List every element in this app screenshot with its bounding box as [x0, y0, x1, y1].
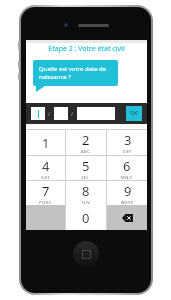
button[interactable]: 5 — [66, 156, 106, 180]
button[interactable]: 3 — [107, 130, 147, 155]
staticText: 5 — [82, 157, 90, 175]
button[interactable]: 6 — [107, 156, 147, 180]
staticText: WXYZ — [121, 200, 134, 205]
staticText: 4 — [42, 157, 50, 175]
button[interactable]: 2 — [66, 130, 106, 155]
button[interactable] — [31, 107, 45, 120]
staticText: 1 — [42, 134, 50, 152]
staticText: 6 — [123, 157, 131, 175]
staticText: GHI — [41, 175, 50, 180]
button[interactable]: 4 — [26, 156, 65, 180]
staticText: 0 — [82, 209, 90, 227]
button[interactable]: 7 — [26, 181, 65, 205]
button[interactable]: 0 — [66, 205, 106, 230]
staticText: OK — [130, 110, 138, 117]
staticText: Quelle est votre date de naissance ? — [39, 65, 112, 81]
staticText: DEF — [123, 149, 132, 154]
staticText: TUV — [81, 200, 91, 205]
staticText: ABC — [81, 149, 91, 154]
staticText: JKL — [82, 175, 90, 180]
staticText: / — [71, 110, 74, 118]
staticText: 3 — [124, 131, 132, 149]
staticText: 2 — [82, 131, 90, 149]
button[interactable]: 8 — [66, 181, 106, 205]
button[interactable]: Etape 2 : Votre état civil — [26, 43, 147, 55]
staticText: 8 — [82, 182, 90, 200]
staticText: / — [48, 110, 51, 118]
staticText: PQRS — [39, 200, 52, 205]
staticText: 7 — [42, 182, 50, 200]
button[interactable]: OK — [126, 106, 142, 121]
staticText: Etape 2 : Votre état civil — [48, 44, 125, 54]
staticText: MNO — [121, 175, 133, 180]
button[interactable]: 9 — [107, 181, 147, 205]
staticText: 9 — [124, 182, 132, 200]
button[interactable]: Delete — [107, 205, 147, 230]
button[interactable]: 1 — [26, 130, 65, 155]
